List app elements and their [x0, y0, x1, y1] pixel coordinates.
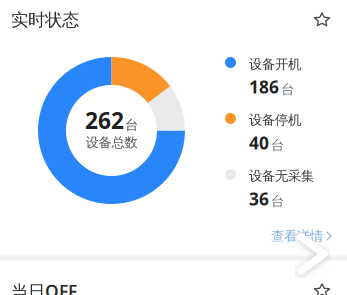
staticText: 262 [85, 105, 124, 135]
staticText: 设备无采集 [249, 168, 314, 184]
staticText: 实时状态 [11, 9, 79, 31]
button[interactable]: 收藏 [306, 276, 338, 295]
staticText: 设备总数 [85, 134, 137, 151]
staticText: 台 [281, 81, 294, 97]
staticText: 台 [125, 117, 138, 133]
staticText: 台 [271, 193, 284, 209]
staticText: 186 [249, 75, 279, 98]
staticText: 设备开机 [249, 56, 301, 72]
staticText: 36 [249, 187, 269, 210]
staticText: 台 [271, 137, 284, 153]
button[interactable]: 查看详情 [267, 222, 335, 250]
staticText: 当日OFF [11, 279, 77, 295]
staticText: 设备停机 [249, 112, 301, 128]
staticText: 40 [249, 131, 269, 154]
staticText: 查看详情 [271, 228, 323, 244]
button[interactable]: 收藏 [306, 5, 338, 35]
